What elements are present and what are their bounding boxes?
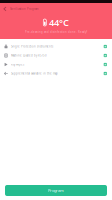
staticText: 44°C xyxy=(49,16,69,29)
button[interactable]: Single Protection Instruments xyxy=(0,42,112,51)
staticText: Supplemental available in the map xyxy=(11,72,58,75)
staticText: Key Wipes xyxy=(11,63,24,66)
button[interactable]: Program xyxy=(5,185,107,196)
button[interactable]: Supplemental available in the map xyxy=(0,69,112,78)
staticText: Single Protection Instruments xyxy=(11,45,53,48)
button[interactable]: Key Wipes xyxy=(0,60,112,69)
button[interactable]: Back xyxy=(0,5,10,13)
staticText: Machine Loaded by 45/50 xyxy=(11,54,47,57)
button[interactable]: Machine Loaded by 45/50 xyxy=(0,51,112,60)
staticText: Program xyxy=(48,188,64,193)
staticText: Pre-cleaning and disinfection done. Read… xyxy=(25,30,87,34)
staticText: Sterilization Program xyxy=(10,7,38,11)
